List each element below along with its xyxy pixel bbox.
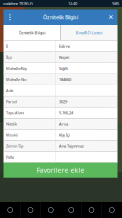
staticText: Favorilere ekle	[36, 166, 84, 175]
staticText: 5.166,24	[59, 110, 73, 115]
button[interactable]: Menu	[3, 9, 16, 25]
staticText: Ada	[6, 88, 13, 93]
button[interactable]: Locate	[20, 202, 41, 218]
staticText: Öznitelik Bilgisi	[43, 14, 78, 21]
staticText: Zemin Tip	[6, 143, 23, 149]
staticText: Keşan	[59, 55, 69, 60]
staticText: Arsa	[59, 121, 68, 126]
staticText: Siğilli	[59, 66, 68, 71]
staticText: Bina/BÖ Listesi	[75, 30, 102, 35]
staticText: Mahalle No	[6, 77, 26, 82]
staticText: İlçe	[6, 55, 12, 60]
button[interactable]: Refresh	[0, 202, 20, 218]
staticText: Tapu Alanı	[6, 110, 24, 115]
button[interactable]: Print	[102, 202, 122, 218]
button[interactable]: Bina/BÖ Listesi	[60, 25, 117, 41]
staticText: 3029	[59, 99, 67, 104]
staticText: 184660	[59, 77, 71, 82]
staticText: Mahalle/Köy	[6, 66, 27, 71]
staticText: Mevkii	[6, 132, 18, 138]
staticText: vodafone TR Wi-Fi	[3, 1, 33, 6]
button[interactable]: Info	[41, 202, 61, 218]
button[interactable]: Öznitelik Bilgisi	[3, 25, 60, 41]
staticText: Öznitelik Bilgisi	[18, 30, 45, 35]
staticText: Pafta	[6, 154, 14, 160]
staticText: ✕	[108, 13, 114, 21]
button[interactable]: Layers	[81, 202, 102, 218]
staticText: Ana Taşınmaz	[59, 143, 84, 149]
button[interactable]: Favorilere ekle	[3, 163, 117, 178]
staticText: Köy İçi	[59, 132, 70, 138]
staticText: Parsel	[6, 99, 17, 104]
staticText: Edirne	[59, 43, 70, 49]
staticText: %85	[112, 1, 119, 6]
staticText: İl	[6, 43, 8, 49]
button[interactable]: Favorites	[61, 202, 81, 218]
staticText: 12:40	[68, 1, 77, 6]
staticText: Nitelik	[6, 121, 17, 126]
button[interactable]: Close	[104, 9, 117, 25]
